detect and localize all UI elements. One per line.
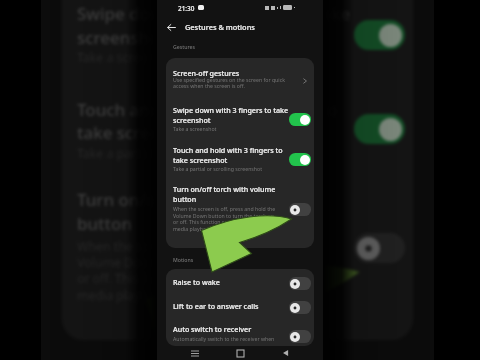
button[interactable]: Auto switch to receiver (166, 321, 314, 346)
staticText: When the screen is off, press and hold t… (77, 238, 320, 255)
button[interactable]: Touch and hold with 3 fingers to (166, 138, 314, 181)
staticText: button (77, 212, 133, 235)
staticText: Screen-off gestures (173, 68, 240, 78)
button[interactable]: Turn on/off torch with volume (166, 181, 314, 248)
button[interactable]: Switch on (354, 20, 405, 50)
button[interactable]: Switch off (289, 203, 311, 216)
button[interactable]: Lift to ear to answer calls (166, 297, 314, 321)
staticText: media playback is in progress. (173, 225, 247, 232)
staticText: Auto switch to receiver (173, 324, 252, 334)
staticText: access when the screen is off. (173, 82, 245, 89)
staticText: button (173, 194, 197, 204)
staticText: 21:30 (178, 4, 195, 13)
staticText: Swipe down with 3 fingers to take (77, 2, 351, 25)
staticText: Turn on/off torch with volume (77, 188, 320, 211)
button[interactable]: Switch on (289, 153, 311, 166)
button[interactable]: Switch off (289, 301, 311, 314)
staticText: Gestures & motions (185, 22, 255, 32)
button[interactable]: Recent apps (187, 345, 203, 360)
staticText: screenshot (77, 26, 167, 49)
button[interactable]: Switch off (289, 330, 311, 343)
staticText: Take a screenshot (77, 49, 181, 66)
staticText: Take a partial or scrolling screenshot (173, 165, 263, 172)
staticText: Swipe down with 3 fingers to take (173, 105, 289, 115)
button[interactable]: Back (278, 345, 294, 360)
staticText: Volume Down button to turn the torch on (173, 212, 275, 219)
staticText: Take a screenshot (173, 125, 217, 132)
button[interactable]: Screen-off gestures (166, 58, 314, 95)
staticText: Gestures (173, 43, 196, 50)
staticText: When the screen is off, press and hold t… (173, 205, 276, 212)
button[interactable]: Switch off (354, 233, 405, 263)
button[interactable]: Turn on/off torch with volume (62, 182, 413, 340)
button[interactable]: Switch off (289, 277, 311, 290)
staticText: Automatically switch to the receiver whe… (173, 335, 275, 342)
button[interactable]: Raise to wake (166, 269, 314, 297)
staticText: Touch and hold with 3 fingers to (77, 98, 338, 121)
staticText: or off. This function can't be used when (173, 218, 269, 225)
button[interactable]: Swipe down with 3 fingers to take (62, 0, 413, 80)
staticText: Take a partial or scrolling screenshot (77, 145, 289, 162)
staticText: Turn on/off torch with volume (173, 184, 276, 194)
staticText: Raise to wake (173, 277, 220, 287)
staticText: Touch and hold with 3 fingers to (173, 145, 283, 155)
staticText: Motions (173, 256, 194, 263)
button[interactable]: Back (164, 20, 179, 35)
staticText: take screenshot (173, 155, 228, 165)
staticText: Volume Down button to turn the torch on (77, 254, 317, 271)
button[interactable]: Swipe down with 3 fingers to take (166, 95, 314, 138)
staticText: Use specified gestures on the screen for… (173, 76, 285, 83)
button[interactable]: Switch on (289, 113, 311, 126)
staticText: media playback is in progress. (77, 287, 251, 304)
button[interactable]: Touch and hold with 3 fingers to (62, 80, 413, 182)
staticText: take screenshot (77, 121, 206, 144)
staticText: Lift to ear to answer calls (173, 301, 259, 311)
staticText: or off. This function can't be used when (77, 270, 305, 287)
staticText: screenshot (173, 115, 211, 125)
button[interactable]: Home (232, 345, 248, 360)
button[interactable]: Switch on (354, 114, 405, 144)
